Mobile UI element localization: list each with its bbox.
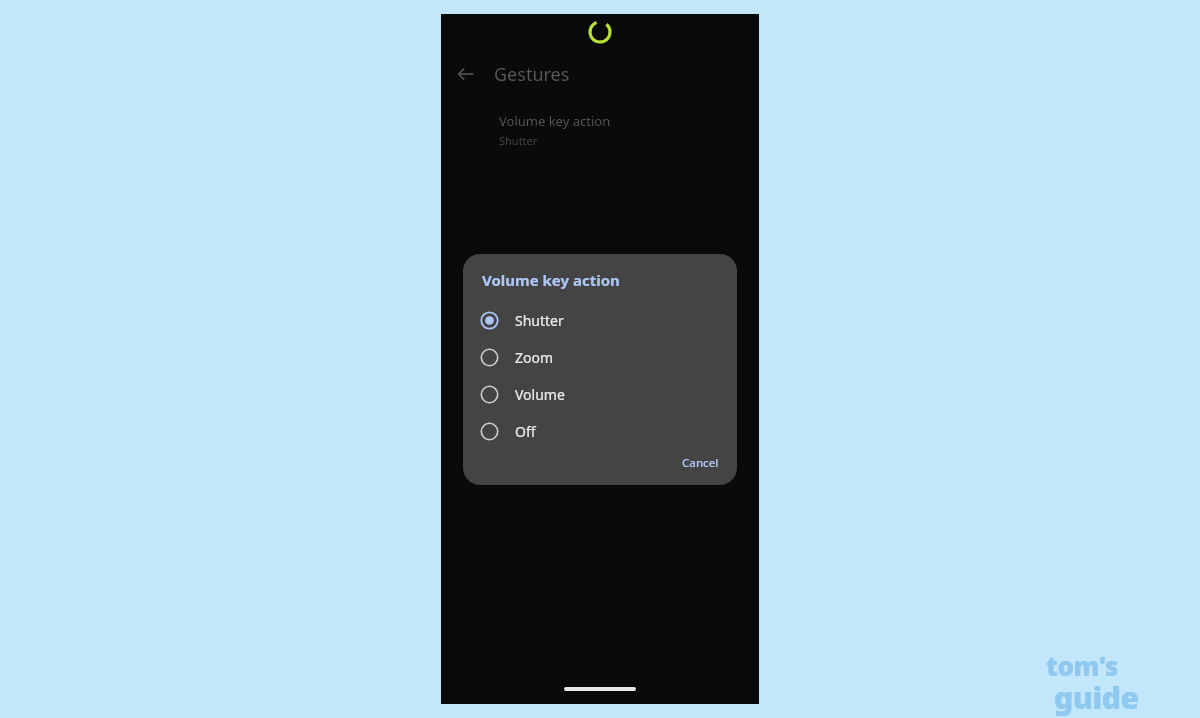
staticText: Volume key action (499, 112, 611, 130)
button[interactable]: Cancel (674, 450, 727, 476)
staticText: guide (1054, 677, 1139, 718)
staticText: Shutter (499, 133, 538, 148)
staticText: tom's (1046, 648, 1119, 683)
button[interactable]: Shutter (463, 302, 737, 339)
button[interactable]: Off (463, 413, 737, 450)
staticText: Volume key action (482, 270, 620, 290)
staticText: Gestures (494, 62, 570, 87)
button[interactable]: Volume (463, 376, 737, 413)
button[interactable]: Volume key action (499, 106, 817, 154)
button[interactable]: Back (450, 58, 482, 90)
button[interactable]: Zoom (463, 339, 737, 376)
staticText: Cancel (682, 455, 719, 471)
staticText: Off (515, 422, 536, 441)
staticText: Zoom (515, 348, 554, 367)
staticText: Shutter (515, 311, 564, 330)
staticText: Volume (515, 385, 565, 404)
